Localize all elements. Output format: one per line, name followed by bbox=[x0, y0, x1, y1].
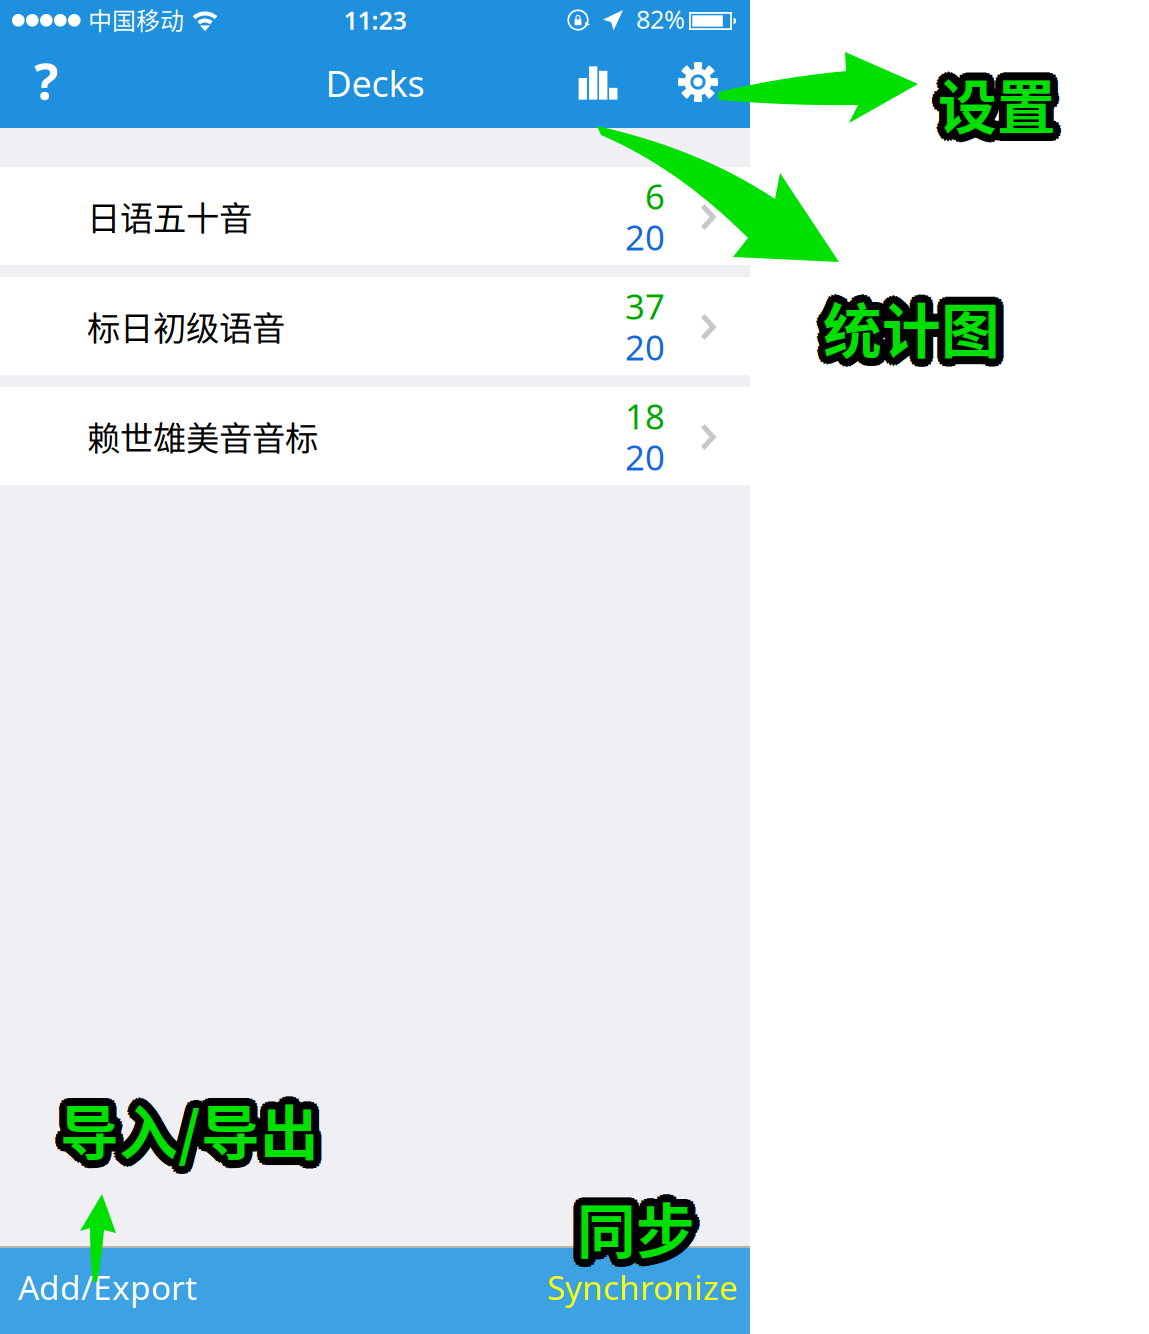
staticText: 设置 bbox=[932, 67, 1050, 152]
staticText: 同步 bbox=[585, 1185, 703, 1270]
staticText: 设置 bbox=[932, 55, 1050, 140]
staticText: 导入/导出 bbox=[68, 1087, 327, 1172]
staticText: 统计图 bbox=[817, 291, 994, 376]
staticText: 同步 bbox=[584, 1188, 702, 1273]
staticText: 同步 bbox=[569, 1185, 687, 1270]
staticText: 统计图 bbox=[816, 282, 993, 367]
staticText: 统计图 bbox=[830, 288, 1007, 373]
staticText: 20 bbox=[625, 214, 665, 260]
staticText: 导入/导出 bbox=[53, 1084, 312, 1169]
staticText: 导入/导出 bbox=[63, 1080, 322, 1165]
staticText: 18 bbox=[625, 393, 665, 439]
staticText: 同步 bbox=[584, 1182, 702, 1267]
staticText: 统计图 bbox=[829, 279, 1006, 364]
button[interactable]: Settings bbox=[649, 42, 747, 122]
staticText: 导入/导出 bbox=[63, 1094, 322, 1179]
staticText: 统计图 bbox=[831, 285, 1008, 370]
staticText: 设置 bbox=[945, 58, 1063, 143]
staticText: 11:23 bbox=[343, 3, 406, 37]
staticText: 设置 bbox=[941, 54, 1059, 139]
staticText: 设置 bbox=[944, 67, 1062, 152]
staticText: 统计图 bbox=[830, 282, 1007, 367]
staticText: 赖世雄美音音标 bbox=[87, 412, 318, 460]
staticText: 导入/导出 bbox=[52, 1087, 311, 1172]
staticText: 中国移动 bbox=[88, 2, 184, 37]
staticText: 统计图 bbox=[823, 277, 1000, 362]
button[interactable]: 日语五十音 bbox=[0, 167, 750, 265]
button[interactable]: Add/Export bbox=[0, 1244, 215, 1330]
staticText: 统计图 bbox=[826, 292, 1003, 377]
staticText: 同步 bbox=[571, 1191, 689, 1276]
staticText: 统计图 bbox=[816, 288, 993, 373]
staticText: 统计图 bbox=[820, 278, 997, 363]
staticText: 导入/导出 bbox=[53, 1090, 312, 1175]
staticText: 6 bbox=[645, 173, 665, 219]
staticText: 设置 bbox=[930, 61, 1048, 146]
staticText: 统计图 bbox=[823, 285, 1000, 370]
staticText: 同步 bbox=[577, 1177, 695, 1262]
staticText: 同步 bbox=[574, 1192, 692, 1277]
button[interactable]: Help bbox=[3, 40, 89, 120]
staticText: 同步 bbox=[583, 1179, 701, 1264]
staticText: 设置 bbox=[935, 68, 1053, 153]
staticText: 导入/导出 bbox=[54, 1081, 313, 1166]
staticText: 20 bbox=[625, 434, 665, 480]
staticText: Decks bbox=[325, 59, 424, 107]
staticText: 导入/导出 bbox=[66, 1081, 325, 1166]
staticText: 导入/导出 bbox=[67, 1084, 326, 1169]
button[interactable]: 标日初级语音 bbox=[0, 277, 750, 375]
staticText: 统计图 bbox=[823, 293, 1000, 378]
staticText: 设置 bbox=[935, 54, 1053, 139]
staticText: 同步 bbox=[577, 1185, 695, 1270]
staticText: 日语五十音 bbox=[87, 192, 252, 240]
staticText: 标日初级语音 bbox=[87, 302, 285, 350]
staticText: 导入/导出 bbox=[54, 1093, 313, 1178]
staticText: 设置 bbox=[946, 61, 1064, 146]
staticText: 导入/导出 bbox=[57, 1080, 316, 1165]
staticText: 导入/导出 bbox=[60, 1095, 319, 1180]
staticText: 同步 bbox=[570, 1182, 688, 1267]
staticText: 同步 bbox=[577, 1193, 695, 1278]
staticText: 设置 bbox=[938, 69, 1056, 154]
staticText: 同步 bbox=[580, 1178, 698, 1263]
staticText: 设置 bbox=[938, 53, 1056, 138]
staticText: 导入/导出 bbox=[60, 1079, 319, 1164]
staticText: 同步 bbox=[574, 1178, 692, 1263]
staticText: 设置 bbox=[941, 68, 1059, 153]
staticText: Synchronize bbox=[547, 1265, 738, 1309]
staticText: ? bbox=[34, 46, 58, 114]
staticText: 37 bbox=[625, 283, 665, 329]
staticText: 同步 bbox=[580, 1192, 698, 1277]
staticText: 导入/导出 bbox=[66, 1093, 325, 1178]
staticText: 设置 bbox=[945, 64, 1063, 149]
staticText: 统计图 bbox=[817, 279, 994, 364]
staticText: 设置 bbox=[931, 58, 1049, 143]
staticText: 统计图 bbox=[829, 291, 1006, 376]
button[interactable]: Statistics bbox=[552, 43, 644, 123]
staticText: 设置 bbox=[944, 55, 1062, 140]
staticText: 导入/导出 bbox=[60, 1087, 319, 1172]
staticText: 同步 bbox=[571, 1179, 689, 1264]
button[interactable]: 赖世雄美音音标 bbox=[0, 387, 750, 485]
staticText: 统计图 bbox=[815, 285, 992, 370]
staticText: 导入/导出 bbox=[67, 1090, 326, 1175]
button[interactable]: Synchronize bbox=[529, 1244, 756, 1330]
staticText: Add/Export bbox=[18, 1265, 197, 1309]
staticText: 统计图 bbox=[820, 292, 997, 377]
staticText: 同步 bbox=[570, 1188, 688, 1273]
staticText: 设置 bbox=[938, 61, 1056, 146]
staticText: 82% bbox=[636, 2, 685, 36]
staticText: 统计图 bbox=[826, 278, 1003, 363]
staticText: 导入/导出 bbox=[57, 1094, 316, 1179]
staticText: 设置 bbox=[931, 64, 1049, 149]
staticText: 同步 bbox=[583, 1191, 701, 1276]
staticText: 20 bbox=[625, 324, 665, 370]
